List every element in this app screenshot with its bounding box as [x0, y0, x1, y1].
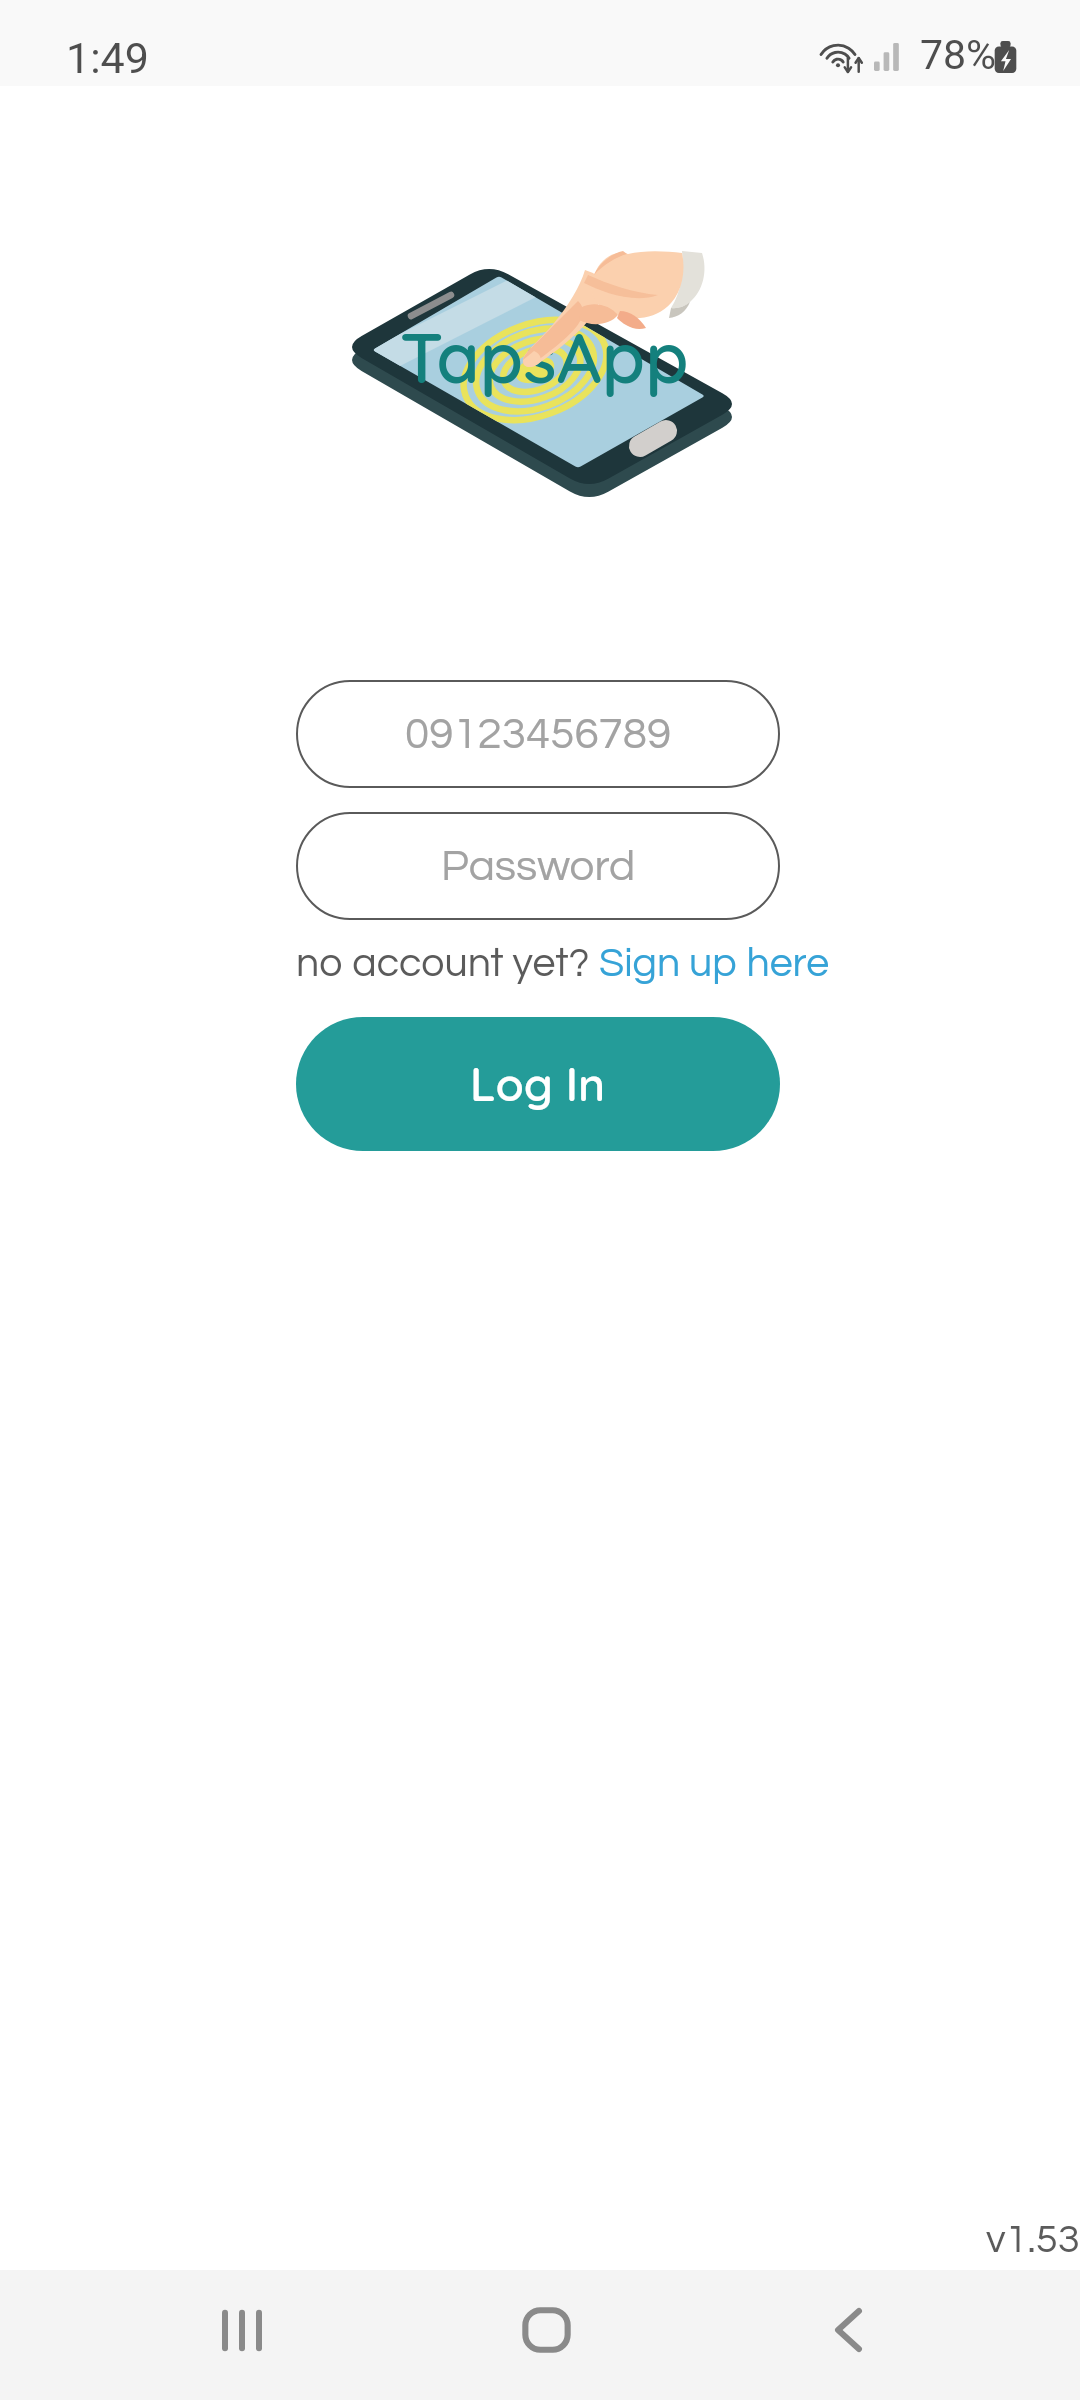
- staticText: Sign up here: [599, 942, 830, 984]
- staticText: TapsApp: [400, 313, 689, 401]
- button[interactable]: Home: [484, 2292, 608, 2368]
- button[interactable]: Sign up here: [599, 942, 830, 984]
- staticText: 78%: [920, 31, 997, 79]
- staticText: 09123456789: [405, 712, 672, 757]
- staticText: 1:49: [66, 33, 149, 83]
- staticText: Log In: [470, 1055, 606, 1113]
- staticText: no account yet?: [296, 942, 599, 984]
- button[interactable]: Log In: [296, 1017, 780, 1151]
- staticText: Password: [441, 844, 636, 889]
- button[interactable]: Back: [786, 2292, 910, 2368]
- staticText: v1.53: [986, 2219, 1080, 2260]
- button[interactable]: 09123456789: [296, 680, 780, 788]
- button[interactable]: Recent apps: [180, 2292, 304, 2368]
- button[interactable]: Password: [296, 812, 780, 920]
